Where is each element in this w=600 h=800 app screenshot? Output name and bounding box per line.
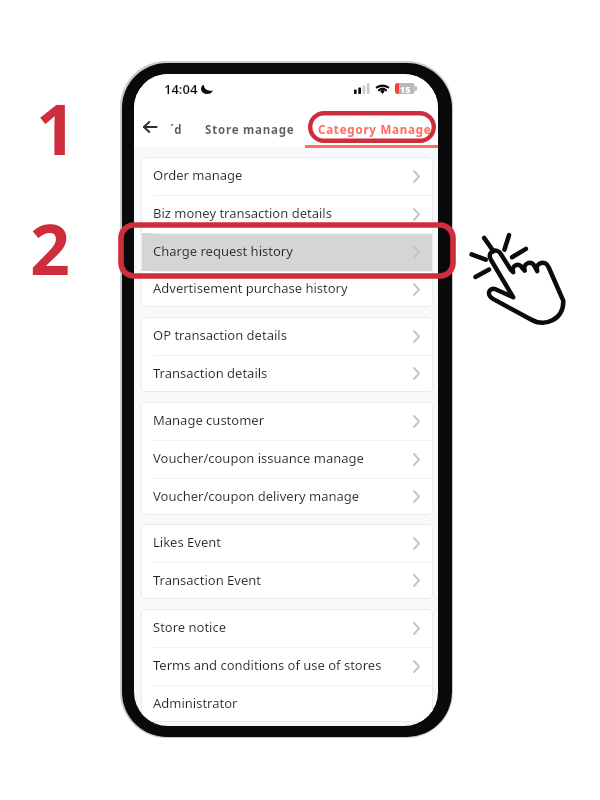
staticText: Voucher/coupon delivery manage bbox=[153, 487, 360, 505]
button[interactable]: Terms and conditions of use of stores bbox=[141, 647, 433, 685]
staticText: 14:04 bbox=[164, 80, 198, 98]
staticText: Transaction details bbox=[153, 364, 268, 382]
staticText: Store notice bbox=[153, 618, 227, 636]
staticText: Terms and conditions of use of stores bbox=[153, 656, 382, 674]
button[interactable]: Charge request history bbox=[141, 233, 433, 271]
staticText: Administrator bbox=[153, 694, 238, 712]
staticText: Advertisement purchase history bbox=[153, 279, 348, 297]
button[interactable]: Likes Event bbox=[141, 524, 433, 562]
button[interactable]: Manage customer bbox=[141, 402, 433, 440]
button[interactable]: Order manage bbox=[141, 157, 433, 195]
staticText: Likes Event bbox=[153, 533, 221, 551]
button[interactable]: Store manage bbox=[204, 110, 296, 150]
staticText: Order manage bbox=[153, 166, 243, 184]
button[interactable]: Biz money transaction details bbox=[141, 195, 433, 233]
staticText: Transaction Event bbox=[153, 571, 261, 589]
button[interactable]: Transaction Event bbox=[141, 562, 433, 599]
staticText: OP transaction details bbox=[153, 326, 287, 344]
staticText: Category Manage bbox=[318, 122, 430, 138]
button[interactable]: Back bbox=[136, 107, 164, 147]
staticText: 15 bbox=[400, 83, 411, 94]
staticText: 1 bbox=[36, 80, 77, 175]
staticText: Biz money transaction details bbox=[153, 204, 332, 222]
button[interactable]: OP transaction details bbox=[141, 317, 433, 355]
button[interactable]: Administrator bbox=[141, 685, 433, 722]
staticText: 2 bbox=[30, 200, 71, 295]
button[interactable]: Voucher/coupon issuance manage bbox=[141, 440, 433, 478]
staticText: Store manage bbox=[205, 122, 295, 138]
button[interactable]: Advertisement purchase history bbox=[141, 271, 433, 307]
button[interactable]: Voucher/coupon delivery manage bbox=[141, 478, 433, 515]
button[interactable]: Transaction details bbox=[141, 355, 433, 392]
staticText: Voucher/coupon issuance manage bbox=[153, 449, 364, 467]
staticText: ˊd bbox=[170, 122, 182, 138]
staticText: Manage customer bbox=[153, 411, 265, 429]
button[interactable]: Category Manage bbox=[318, 110, 430, 150]
other: Tap here bbox=[471, 234, 567, 324]
staticText: Charge request history bbox=[153, 242, 293, 260]
button[interactable]: Store notice bbox=[141, 609, 433, 647]
